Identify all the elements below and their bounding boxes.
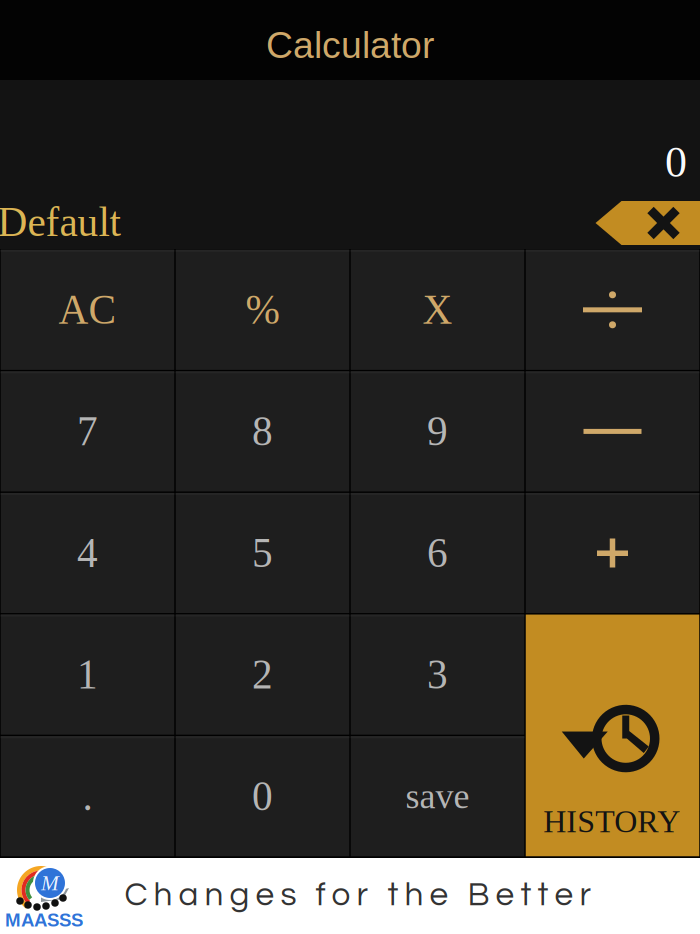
button[interactable]: 4 xyxy=(1,493,174,613)
staticText: X xyxy=(422,287,452,333)
staticText: Calculator xyxy=(266,24,434,66)
staticText: MAASSS xyxy=(5,910,83,930)
button[interactable]: 7 xyxy=(1,371,174,491)
button[interactable]: 1 xyxy=(1,614,174,735)
button[interactable]: . xyxy=(1,736,174,856)
button[interactable]: 0 xyxy=(176,736,349,856)
staticText: save xyxy=(405,776,469,816)
staticText: 0 xyxy=(252,773,273,819)
staticText: Changes for the Better xyxy=(124,878,591,912)
button[interactable]: 3 xyxy=(351,614,524,735)
staticText: 5 xyxy=(252,530,273,576)
staticText: 0 xyxy=(665,138,687,186)
staticText: HISTORY xyxy=(543,804,680,839)
button[interactable]: save xyxy=(351,736,524,856)
staticText: Default xyxy=(0,199,120,245)
staticText: 9 xyxy=(427,408,448,454)
staticText: 4 xyxy=(77,530,98,576)
button[interactable]: % xyxy=(176,250,349,370)
staticText: . xyxy=(82,773,92,819)
button[interactable]: AC xyxy=(1,250,174,370)
staticText: M xyxy=(41,871,59,895)
button[interactable]: 2 xyxy=(176,614,349,735)
staticText: AC xyxy=(58,287,116,333)
staticText: % xyxy=(245,287,279,333)
button[interactable]: Minus xyxy=(526,371,699,491)
button[interactable]: Plus xyxy=(526,493,699,613)
staticText: 3 xyxy=(427,652,448,697)
staticText: 1 xyxy=(77,652,98,697)
button[interactable]: HISTORY xyxy=(526,614,699,856)
staticText: 8 xyxy=(252,408,273,454)
staticText: 7 xyxy=(77,408,98,454)
button[interactable]: X xyxy=(351,250,524,370)
button[interactable]: Changes for the Better advertisement xyxy=(0,858,700,934)
staticText: 2 xyxy=(252,652,273,697)
staticText: 6 xyxy=(427,530,448,576)
button[interactable]: Divide xyxy=(526,250,699,370)
button[interactable]: 9 xyxy=(351,371,524,491)
button[interactable]: 5 xyxy=(176,493,349,613)
button[interactable]: Delete xyxy=(595,201,700,245)
button[interactable]: 8 xyxy=(176,371,349,491)
button[interactable]: 6 xyxy=(351,493,524,613)
